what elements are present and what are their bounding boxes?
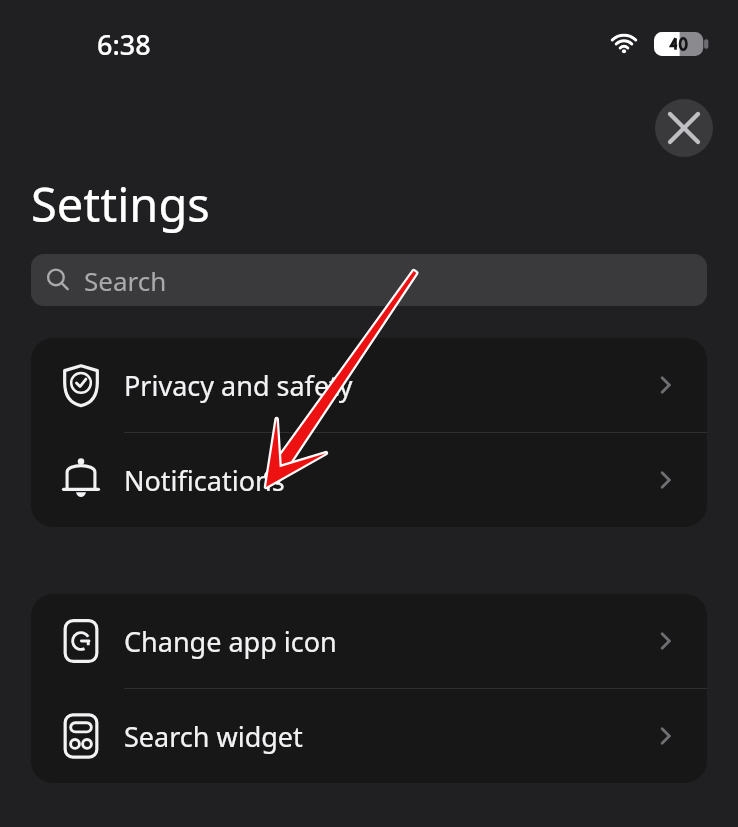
button[interactable]: Change app icon [31, 594, 707, 688]
staticText: Change app icon [124, 623, 337, 660]
staticText: Search [84, 263, 167, 298]
staticText: Notifications [124, 462, 285, 499]
staticText: 6:38 [97, 26, 151, 63]
staticText: Search widget [124, 718, 303, 755]
button[interactable]: Notifications [31, 433, 707, 527]
staticText: Settings [31, 172, 210, 236]
button[interactable]: Search [31, 254, 707, 306]
button[interactable]: Search widget [31, 689, 707, 783]
button[interactable]: Close [655, 99, 713, 157]
staticText: Privacy and safety [124, 367, 353, 404]
button[interactable]: Privacy and safety [31, 338, 707, 432]
